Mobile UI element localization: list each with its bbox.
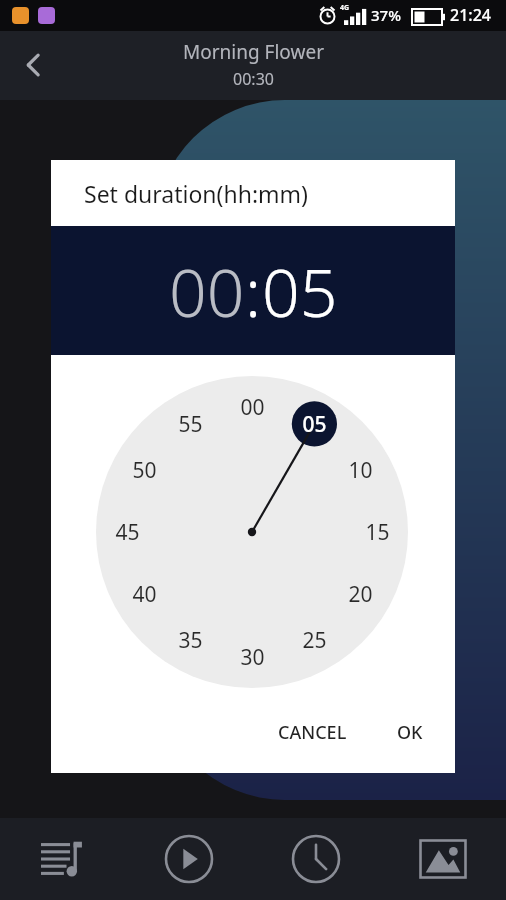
staticText: 00 <box>169 246 245 336</box>
staticText: 45 <box>115 518 140 547</box>
staticText: 05 <box>302 410 327 439</box>
button[interactable]: 35 <box>167 617 213 663</box>
staticText: 10 <box>348 456 373 485</box>
staticText: 37% <box>371 5 401 25</box>
button[interactable]: 05 <box>291 401 337 447</box>
button[interactable]: 15 <box>354 509 400 555</box>
button[interactable]: 25 <box>291 617 337 663</box>
staticText: Set duration(hh:mm) <box>84 178 308 209</box>
staticText: 55 <box>178 410 203 439</box>
button[interactable]: 55 <box>167 401 213 447</box>
button[interactable]: 45 <box>104 509 150 555</box>
button[interactable]: 40 <box>121 571 167 617</box>
staticText: 4G <box>340 3 350 13</box>
button[interactable]: Playlist <box>0 818 126 900</box>
staticText: 30 <box>240 643 265 672</box>
staticText: 15 <box>365 518 390 547</box>
staticText: 00:30 <box>233 68 274 90</box>
button[interactable]: 10 <box>337 447 383 493</box>
staticText: 35 <box>178 626 203 655</box>
button[interactable]: CANCEL <box>260 710 365 755</box>
button[interactable]: 50 <box>121 447 167 493</box>
button[interactable]: Timer <box>252 818 379 900</box>
staticText: : <box>245 246 262 336</box>
staticText: Morning Flower <box>183 39 324 65</box>
button[interactable]: 30 <box>229 634 275 680</box>
staticText: 20 <box>348 580 373 609</box>
button[interactable]: 20 <box>337 571 383 617</box>
staticText: 50 <box>132 456 157 485</box>
staticText: CANCEL <box>278 720 347 745</box>
button[interactable]: Back <box>8 39 60 91</box>
button[interactable]: Play <box>126 818 252 900</box>
button[interactable]: Gallery <box>379 818 506 900</box>
button[interactable]: OK <box>379 710 441 755</box>
staticText: 00 <box>240 393 265 422</box>
staticText: 05 <box>262 246 338 336</box>
staticText: 21:24 <box>450 4 491 26</box>
staticText: 40 <box>132 580 157 609</box>
staticText: 25 <box>302 626 327 655</box>
button[interactable]: 00 <box>229 384 275 430</box>
staticText: OK <box>397 720 423 745</box>
